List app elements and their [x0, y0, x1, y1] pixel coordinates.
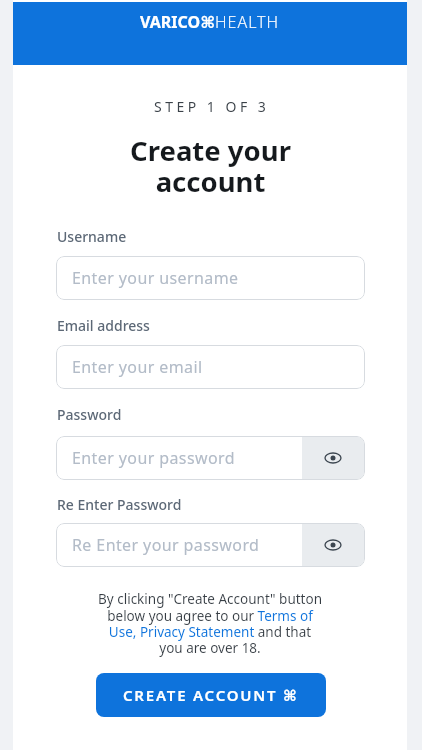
- button[interactable]: [302, 524, 364, 566]
- staticText: Email address: [57, 316, 150, 335]
- staticText: Enter your password: [72, 447, 235, 469]
- button[interactable]: Enter your username: [56, 256, 365, 300]
- staticText: VARICO⌘HEALTH: [140, 11, 280, 33]
- staticText: By clicking "Create Account" button belo…: [98, 590, 322, 657]
- button[interactable]: Enter your password: [56, 436, 365, 480]
- staticText: STEP 1 OF 3: [154, 97, 270, 116]
- staticText: Re Enter your password: [72, 534, 260, 556]
- staticText: Username: [57, 227, 127, 246]
- staticText: Enter your username: [72, 267, 239, 289]
- button[interactable]: [302, 437, 364, 479]
- staticText: Re Enter Password: [57, 495, 182, 514]
- staticText: Enter your email: [72, 356, 203, 378]
- button[interactable]: CREATE ACCOUNT ⌘: [96, 673, 326, 717]
- staticText: Create your account: [130, 132, 291, 200]
- button[interactable]: Enter your email: [56, 345, 365, 389]
- staticText: CREATE ACCOUNT ⌘: [123, 685, 299, 705]
- button[interactable]: VARICO⌘HEALTH: [13, 2, 407, 65]
- staticText: Password: [57, 405, 122, 424]
- button[interactable]: Re Enter your password: [56, 523, 365, 567]
